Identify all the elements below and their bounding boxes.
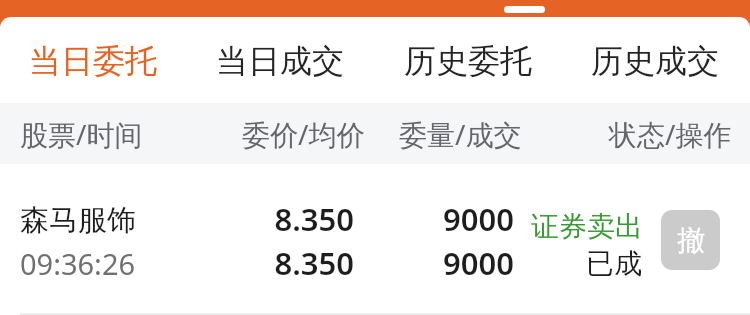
staticText: 历史成交 bbox=[591, 41, 719, 81]
button[interactable]: 历史委托 bbox=[374, 19, 562, 103]
staticText: 撤 bbox=[677, 223, 705, 258]
button[interactable]: 森马服饰 bbox=[0, 164, 750, 315]
staticText: 股票/时间 bbox=[20, 115, 143, 153]
button[interactable]: 撤单 bbox=[661, 210, 720, 270]
staticText: 8.350 bbox=[194, 198, 354, 240]
staticText: 09:36:26 bbox=[20, 244, 136, 283]
staticText: 委量/成交 bbox=[399, 115, 522, 153]
staticText: 森马服饰 bbox=[20, 202, 136, 239]
staticText: 当日成交 bbox=[216, 41, 344, 81]
staticText: 8.350 bbox=[194, 242, 354, 284]
button[interactable]: 当日成交 bbox=[186, 19, 374, 103]
staticText: 已成 bbox=[512, 246, 642, 281]
staticText: 委价/均价 bbox=[242, 115, 365, 153]
staticText: 状态/操作 bbox=[609, 115, 732, 153]
staticText: 9000 bbox=[374, 242, 514, 284]
staticText: 历史委托 bbox=[404, 41, 532, 81]
staticText: 当日委托 bbox=[29, 41, 157, 81]
staticText: 9000 bbox=[374, 198, 514, 240]
button[interactable]: 历史成交 bbox=[561, 19, 749, 103]
staticText: 证券卖出 bbox=[513, 209, 643, 244]
button[interactable]: 当日委托 bbox=[0, 19, 187, 103]
